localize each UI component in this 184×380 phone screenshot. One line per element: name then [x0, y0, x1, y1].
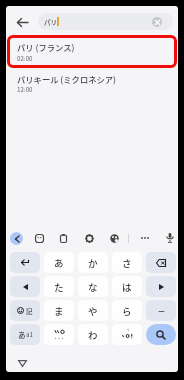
staticText: 02:00 — [17, 54, 33, 63]
staticText: ら — [122, 304, 132, 318]
button[interactable] — [109, 233, 119, 243]
button[interactable] — [139, 233, 151, 243]
staticText: パリ (フランス) — [17, 41, 75, 53]
button[interactable] — [146, 276, 176, 297]
staticText: パリ — [44, 17, 57, 26]
button[interactable]: パリキール (ミクロネシア) — [7, 72, 177, 102]
staticText: ー — [158, 306, 165, 316]
button[interactable] — [14, 14, 30, 30]
button[interactable]: た — [44, 276, 74, 297]
button[interactable]: ま — [44, 300, 74, 321]
button[interactable]: か — [78, 252, 108, 273]
button[interactable] — [44, 324, 74, 345]
staticText: パリキール (ミクロネシア) — [17, 73, 117, 85]
staticText: 記 — [26, 306, 33, 315]
button[interactable] — [164, 232, 175, 244]
button[interactable] — [10, 276, 40, 297]
button[interactable]: な — [78, 276, 108, 297]
button[interactable] — [84, 233, 94, 243]
button[interactable] — [146, 252, 176, 273]
button[interactable] — [112, 324, 142, 345]
staticText: た — [54, 280, 64, 294]
button[interactable]: あ — [44, 252, 74, 273]
button[interactable] — [14, 356, 30, 370]
staticText: あ — [54, 256, 64, 270]
button[interactable]: さ — [112, 252, 142, 273]
button[interactable]: ら — [112, 300, 142, 321]
button[interactable] — [34, 233, 44, 243]
staticText: a1 — [26, 330, 33, 339]
staticText: か — [88, 256, 98, 270]
button[interactable]: は — [112, 276, 142, 297]
button[interactable] — [10, 252, 40, 273]
button[interactable] — [10, 232, 23, 245]
staticText: さ — [122, 256, 132, 270]
staticText: な — [88, 280, 98, 294]
button[interactable] — [58, 233, 68, 243]
staticText: ま — [54, 304, 64, 318]
staticText: 12:00 — [17, 85, 33, 94]
button[interactable]: や — [78, 300, 108, 321]
staticText: は — [122, 280, 132, 294]
button[interactable]: あ — [10, 324, 40, 345]
staticText: や — [88, 304, 98, 318]
button[interactable]: ー — [146, 300, 176, 321]
staticText: わ — [88, 328, 98, 342]
button[interactable]: パリ (フランス) — [7, 35, 177, 68]
button[interactable]: わ — [78, 324, 108, 345]
button[interactable]: 記 — [10, 300, 40, 321]
button[interactable] — [152, 17, 162, 27]
button[interactable]: パリ — [38, 13, 173, 30]
button[interactable] — [146, 324, 176, 345]
staticText: あ — [18, 329, 26, 340]
